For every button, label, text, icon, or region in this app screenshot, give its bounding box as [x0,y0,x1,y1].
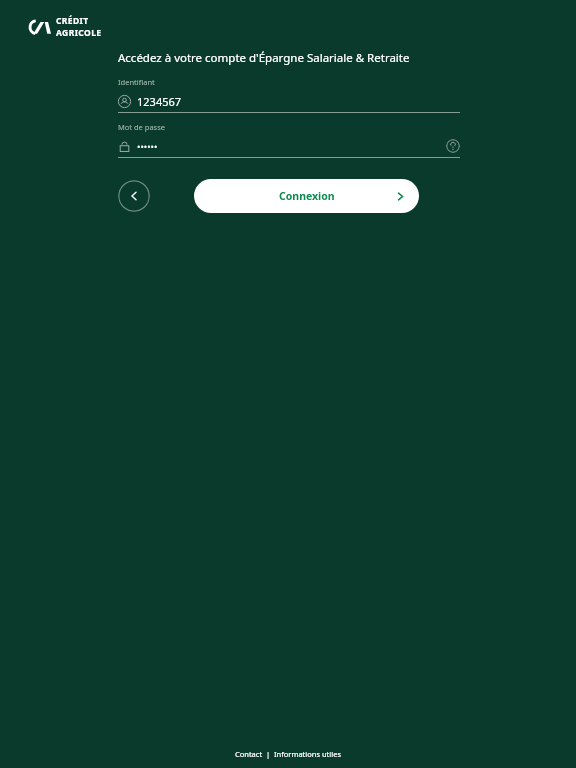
button[interactable]: Crédit Agricole [30,15,102,39]
button[interactable]: •••••• [118,137,460,155]
button[interactable]: Connexion [194,179,419,213]
button[interactable]: Informations utiles [271,747,345,761]
staticText: Informations utiles [274,749,342,759]
button[interactable]: Retour [118,180,150,212]
staticText: AGRICOLE [56,27,102,39]
staticText: Mot de passe [118,122,166,132]
staticText: Connexion [279,189,335,203]
button[interactable]: Aide mot de passe [446,139,460,153]
button[interactable]: Contact [232,747,266,761]
staticText: •••••• [137,140,158,152]
staticText: Identifiant [118,77,155,87]
button[interactable]: 1234567 [118,92,460,110]
staticText: Contact [235,749,263,759]
staticText: 1234567 [137,94,182,109]
staticText: | [266,749,271,759]
staticText: Accédez à votre compte d'Épargne Salaria… [118,50,410,66]
staticText: CRÉDIT [56,15,89,27]
